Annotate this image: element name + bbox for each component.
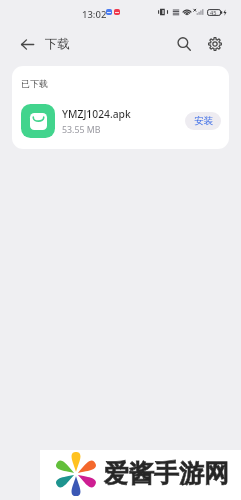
- staticText: 安装: [194, 115, 213, 127]
- staticText: 53.55 MB: [62, 124, 101, 136]
- button[interactable]: YMZJ1024.apk: [12, 96, 229, 146]
- staticText: 爱酱手游网: [104, 458, 229, 489]
- staticText: 45: [210, 9, 217, 16]
- button[interactable]: 安装: [185, 112, 221, 130]
- staticText: YMZJ1024.apk: [62, 107, 131, 121]
- button[interactable]: Back: [12, 29, 43, 60]
- staticText: 下载: [45, 36, 70, 52]
- staticText: 13:02: [82, 8, 107, 21]
- button[interactable]: Search: [168, 28, 199, 59]
- staticText: 爱酱手游网: [104, 458, 229, 489]
- button[interactable]: Settings: [199, 28, 230, 59]
- staticText: 已下载: [21, 78, 48, 89]
